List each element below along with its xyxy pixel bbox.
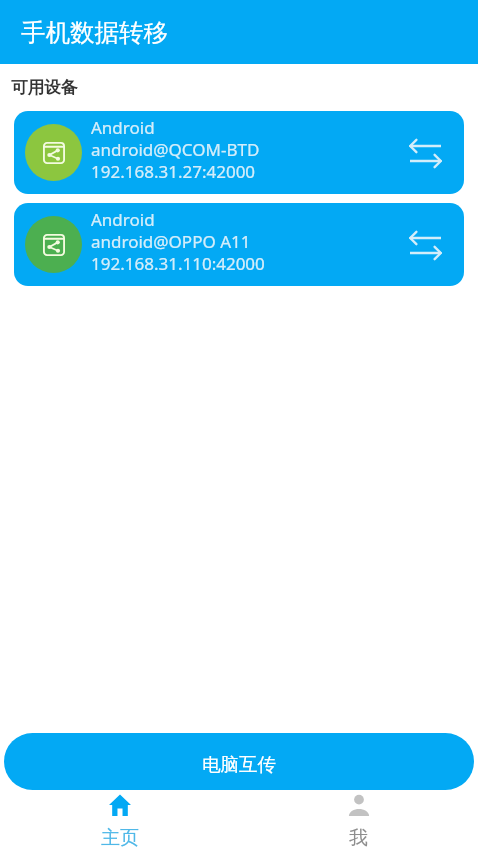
staticText: Android <box>91 116 155 139</box>
staticText: android@QCOM-BTD <box>91 138 260 161</box>
staticText: Android <box>91 208 155 231</box>
staticText: 我 <box>349 826 368 850</box>
staticText: 192.168.31.110:42000 <box>91 252 265 275</box>
button[interactable]: Android <box>14 203 464 286</box>
staticText: 可用设备 <box>11 77 77 98</box>
button[interactable]: 电脑互传 <box>4 733 474 790</box>
staticText: 192.168.31.27:42000 <box>91 160 256 183</box>
button[interactable]: 主页 <box>0 790 239 850</box>
button[interactable]: Android <box>14 111 464 194</box>
staticText: 手机数据转移 <box>21 17 168 48</box>
button[interactable]: Transfer <box>401 221 449 269</box>
staticText: 主页 <box>101 826 139 850</box>
button[interactable]: 我 <box>239 790 478 850</box>
staticText: 电脑互传 <box>202 753 276 776</box>
staticText: android@OPPO A11 <box>91 230 251 253</box>
button[interactable]: Transfer <box>401 129 449 177</box>
